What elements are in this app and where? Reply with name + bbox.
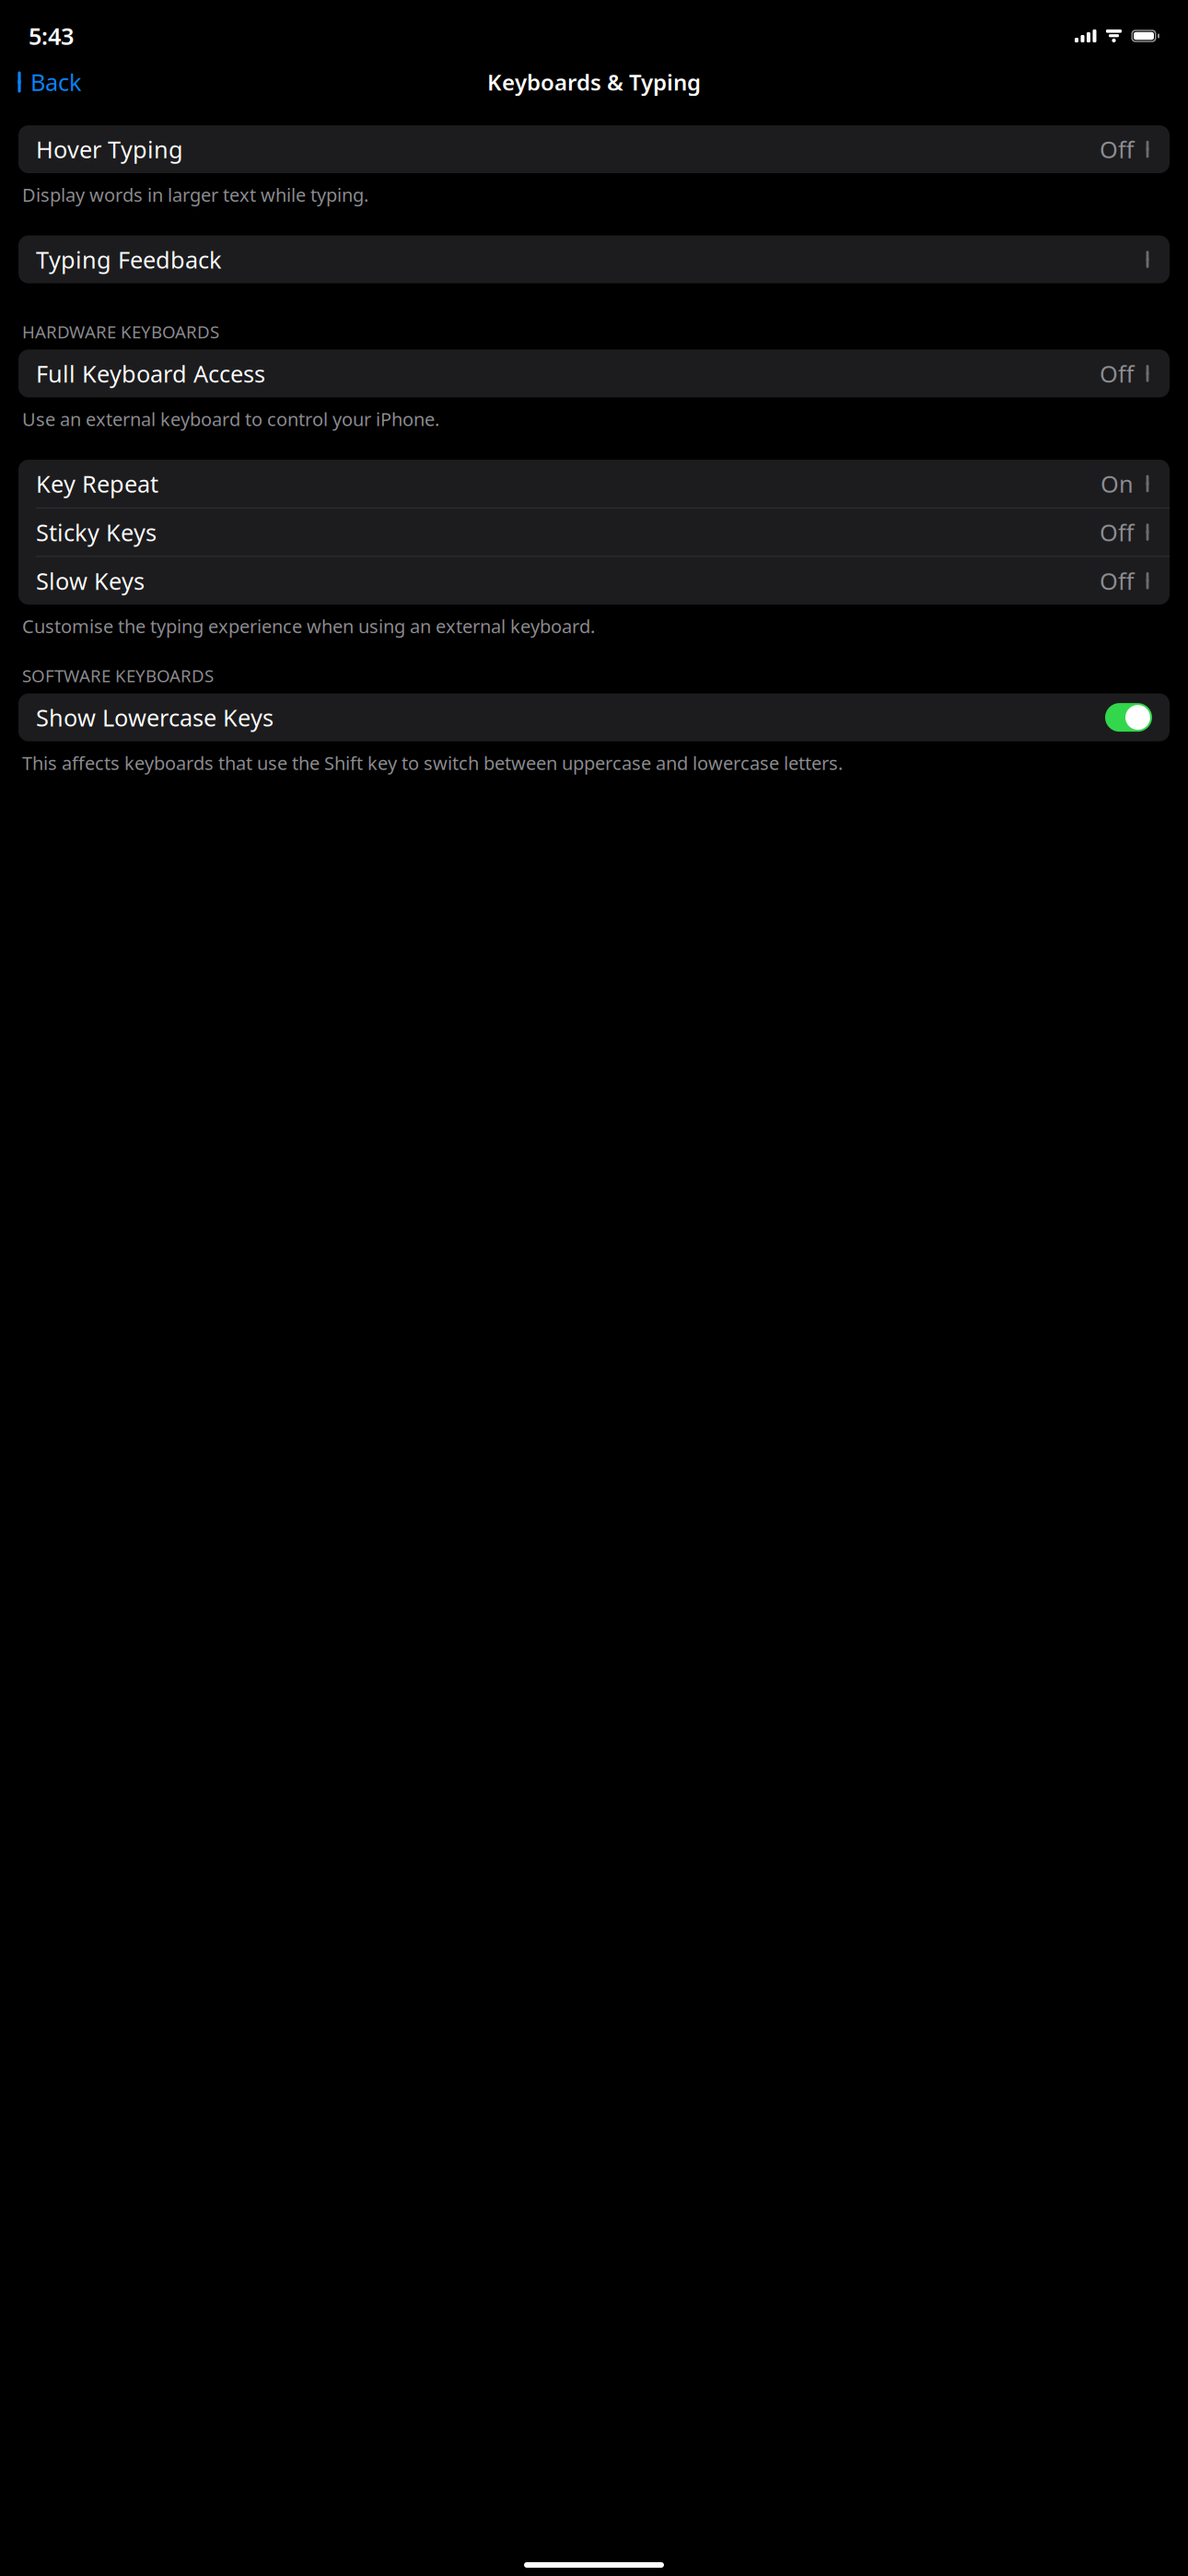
button[interactable]: Slow Keys [18, 557, 1170, 605]
button[interactable]: Sticky Keys [18, 508, 1170, 556]
staticText: SOFTWARE KEYBOARDS [22, 664, 214, 687]
staticText: 5:43 [29, 20, 74, 51]
staticText: HARDWARE KEYBOARDS [22, 320, 219, 343]
staticText: Keyboards & Typing [487, 67, 701, 97]
staticText: Off [1100, 134, 1134, 165]
staticText: Hover Typing [36, 134, 183, 165]
staticText: On [1101, 468, 1134, 499]
staticText: Sticky Keys [36, 517, 157, 548]
staticText: Off [1100, 517, 1134, 548]
staticText: Display words in larger text while typin… [22, 182, 368, 207]
staticText: Typing Feedback [36, 244, 222, 275]
button[interactable]: Typing Feedback [18, 235, 1170, 283]
button[interactable]: Show Lowercase Keys [18, 693, 1170, 741]
button[interactable]: Key Repeat [18, 460, 1170, 508]
staticText: Slow Keys [36, 565, 145, 596]
button[interactable]: Full Keyboard Access [18, 349, 1170, 397]
staticText: Customise the typing experience when usi… [22, 614, 595, 638]
staticText: Off [1100, 358, 1134, 389]
staticText: Use an external keyboard to control your… [22, 407, 439, 431]
staticText: This affects keyboards that use the Shif… [22, 751, 843, 775]
staticText: Off [1100, 565, 1134, 596]
button[interactable]: Hover Typing [18, 125, 1170, 173]
staticText: Full Keyboard Access [36, 358, 265, 389]
staticText: Back [30, 67, 82, 97]
staticText: Show Lowercase Keys [36, 702, 274, 733]
staticText: Key Repeat [36, 468, 158, 499]
button[interactable]: Back [9, 58, 87, 106]
